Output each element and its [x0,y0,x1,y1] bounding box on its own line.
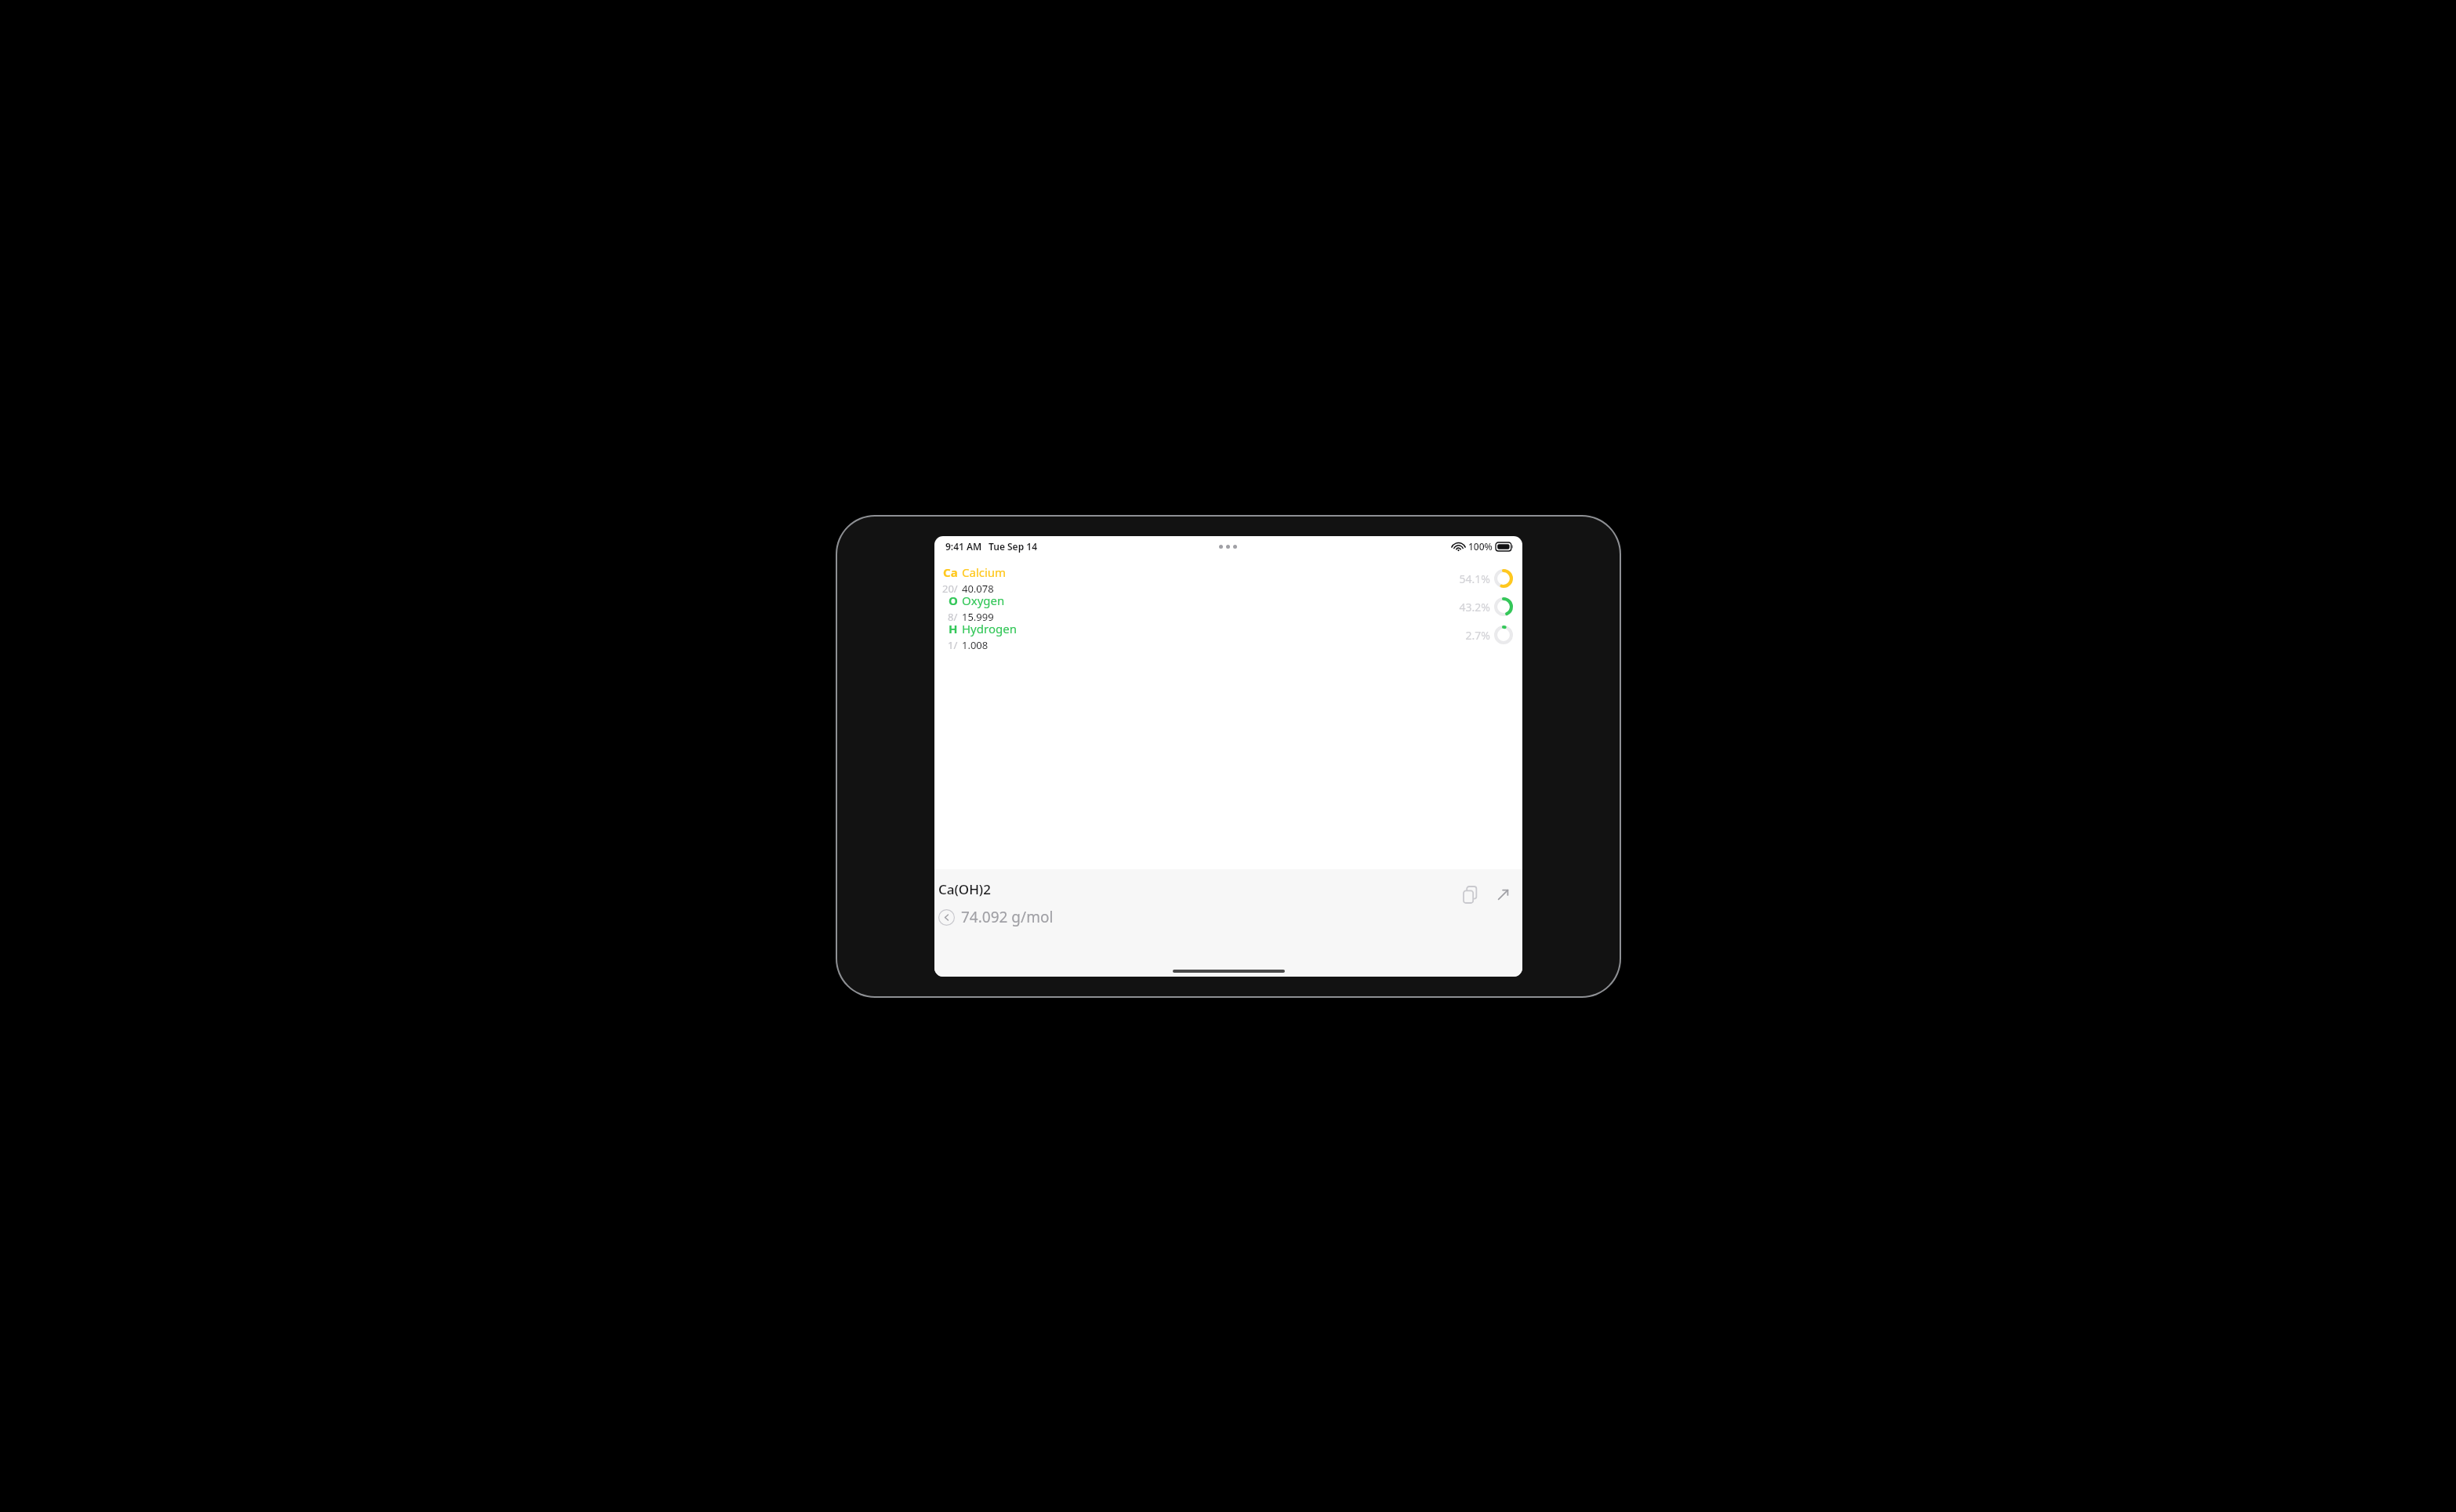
staticText: 74.092 g/mol [961,907,1054,927]
button[interactable]: Open [1489,881,1516,908]
button[interactable]: H [934,621,1522,649]
button[interactable]: Copy [1458,881,1485,908]
staticText: 2.7% [1465,628,1490,643]
staticText: O [949,593,958,608]
button[interactable]: O [934,593,1522,621]
staticText: 100% [1468,540,1493,553]
staticText: H [949,621,958,636]
staticText: 1.008 [962,638,989,649]
staticText: 9:41 AM [945,540,982,553]
staticText: Calcium [962,564,1007,580]
button[interactable]: 74.092 g/mol [938,907,1054,927]
staticText: Hydrogen [962,621,1017,636]
staticText: 15.999 [962,610,994,621]
staticText: 1/ [948,638,958,649]
staticText: Ca [943,564,958,580]
staticText: Oxygen [962,593,1005,608]
staticText: 8/ [948,610,958,621]
staticText: 54.1% [1459,571,1490,586]
staticText: 20/ [942,582,958,593]
staticText: 43.2% [1459,600,1490,615]
button[interactable]: Ca [934,564,1522,593]
staticText: 40.078 [962,582,994,593]
staticText: Tue Sep 14 [989,540,1038,553]
staticText: Ca(OH)2 [938,880,991,898]
